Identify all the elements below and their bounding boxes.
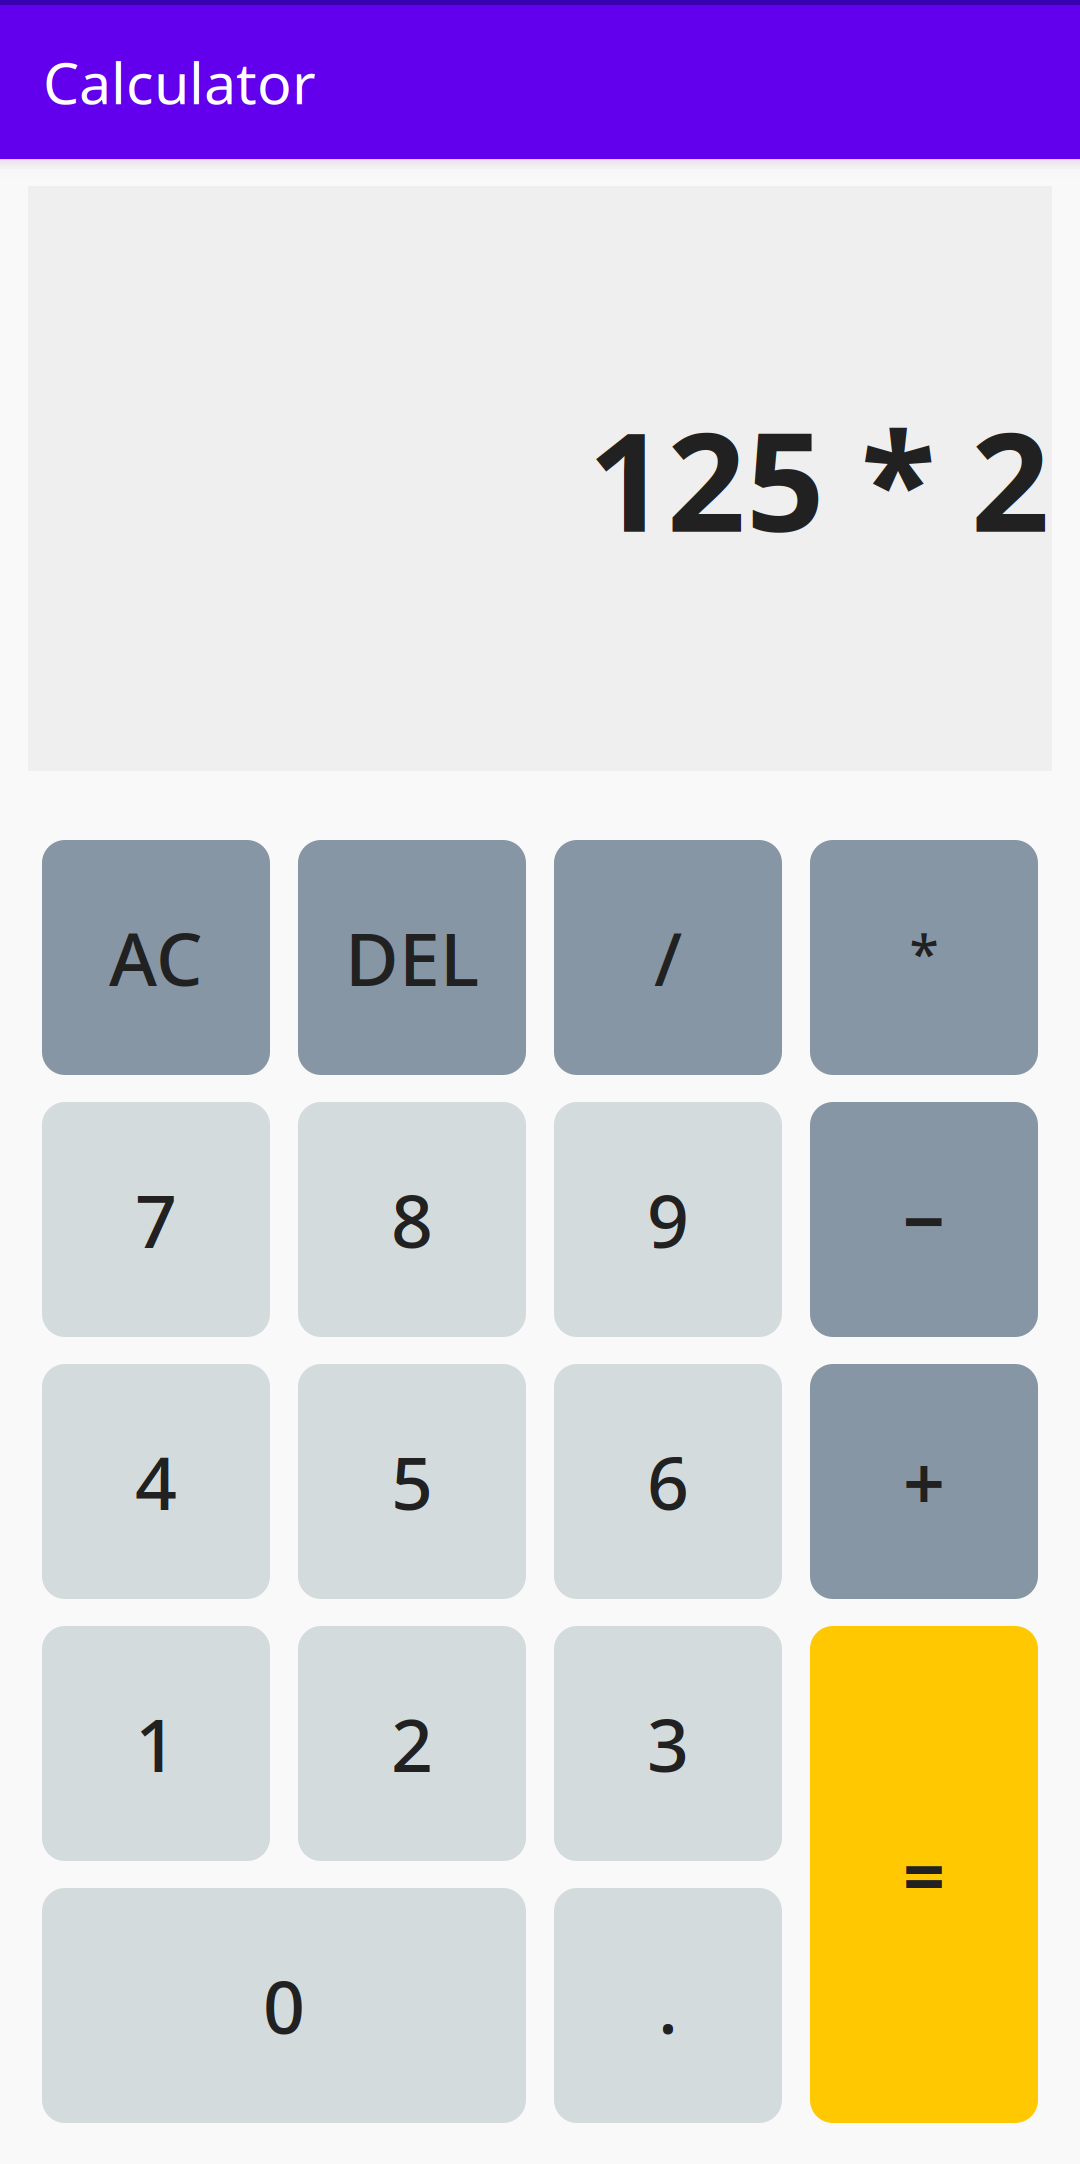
staticText: /: [654, 909, 682, 1006]
button[interactable]: 4: [42, 1364, 270, 1599]
staticText: =: [903, 1826, 945, 1923]
staticText: 5: [391, 1433, 433, 1530]
staticText: 4: [135, 1433, 177, 1530]
button[interactable]: 7: [42, 1102, 270, 1337]
button[interactable]: Equals: [810, 1626, 1038, 2123]
staticText: *: [909, 917, 938, 988]
button[interactable]: 6: [554, 1364, 782, 1599]
button[interactable]: 3: [554, 1626, 782, 1861]
button[interactable]: DEL: [298, 840, 526, 1075]
button[interactable]: Divide: [554, 840, 782, 1075]
button[interactable]: Decimal point: [554, 1888, 782, 2123]
staticText: 2: [391, 1695, 433, 1792]
staticText: 9: [647, 1171, 689, 1268]
staticText: 6: [647, 1433, 689, 1530]
staticText: AC: [109, 909, 203, 1006]
staticText: .: [658, 1957, 678, 2054]
staticText: 3: [647, 1695, 689, 1792]
staticText: 7: [135, 1171, 177, 1268]
staticText: 1: [135, 1695, 177, 1792]
button[interactable]: AC: [42, 840, 270, 1075]
button[interactable]: 0: [42, 1888, 526, 2123]
staticText: 0: [263, 1957, 305, 2054]
button[interactable]: Plus: [810, 1364, 1038, 1599]
button[interactable]: Minus: [810, 1102, 1038, 1337]
button[interactable]: 8: [298, 1102, 526, 1337]
staticText: 125 * 2: [588, 387, 1050, 570]
staticText: −: [902, 1171, 945, 1268]
button[interactable]: 1: [42, 1626, 270, 1861]
staticText: +: [903, 1433, 945, 1530]
staticText: Calculator: [43, 44, 316, 120]
button[interactable]: Multiply: [810, 840, 1038, 1075]
button[interactable]: 9: [554, 1102, 782, 1337]
button[interactable]: 2: [298, 1626, 526, 1861]
button[interactable]: 5: [298, 1364, 526, 1599]
staticText: DEL: [345, 909, 479, 1006]
staticText: 8: [391, 1171, 433, 1268]
